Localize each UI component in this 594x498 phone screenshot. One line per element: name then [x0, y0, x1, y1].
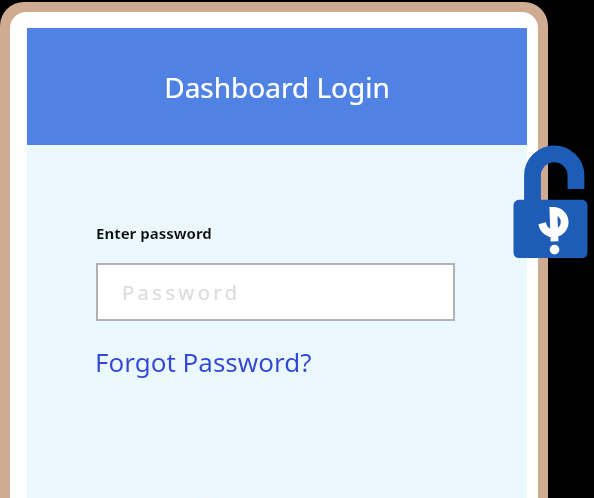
button[interactable]: Password input — [96, 263, 455, 321]
staticText: Password — [122, 279, 241, 306]
button[interactable]: Forgot password help — [512, 150, 594, 262]
staticText: Forgot Password? — [95, 344, 312, 379]
staticText: Enter password — [96, 223, 212, 243]
button[interactable]: Dashboard Login — [27, 28, 527, 145]
staticText: Dashboard Login — [164, 68, 390, 106]
button[interactable]: Forgot Password? — [93, 342, 314, 381]
